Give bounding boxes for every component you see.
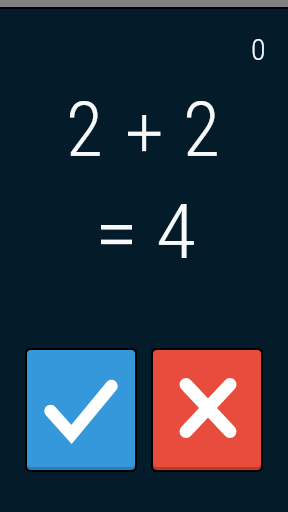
staticText: 2 bbox=[66, 85, 105, 174]
staticText: 2 bbox=[183, 85, 222, 174]
button[interactable]: Correct bbox=[27, 350, 135, 470]
staticText: 0 bbox=[251, 32, 266, 67]
staticText: 4 bbox=[156, 187, 198, 276]
button[interactable]: Wrong bbox=[153, 350, 261, 470]
